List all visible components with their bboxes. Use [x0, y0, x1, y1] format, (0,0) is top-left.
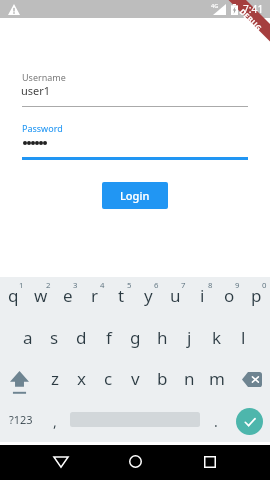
staticText: l [241, 326, 246, 349]
button[interactable]: Home [114, 445, 156, 480]
button[interactable]: j [176, 320, 203, 354]
staticText: s [50, 326, 59, 349]
button[interactable]: Shift [0, 365, 39, 399]
staticText: 3 [73, 280, 78, 290]
staticText: 0 [262, 280, 267, 290]
staticText: k [212, 326, 222, 349]
staticText: z [51, 367, 59, 390]
staticText: w [34, 284, 48, 307]
staticText: 7:41 [243, 2, 264, 16]
button[interactable]: f [95, 320, 122, 354]
button[interactable]: k [203, 320, 230, 354]
staticText: j [187, 326, 192, 349]
staticText: 4G [211, 2, 219, 9]
button[interactable]: Recents [189, 445, 231, 480]
button[interactable]: g [122, 320, 149, 354]
button[interactable]: x [68, 361, 95, 395]
staticText: 7 [181, 280, 186, 290]
staticText: 6 [154, 280, 159, 290]
button[interactable]: t [108, 278, 135, 312]
button[interactable]: y [135, 278, 162, 312]
button[interactable]: m [203, 361, 230, 395]
staticText: d [76, 326, 87, 349]
button[interactable]: l [230, 320, 257, 354]
button[interactable]: z [41, 361, 68, 395]
staticText: p [251, 284, 262, 307]
button[interactable]: w [27, 278, 54, 312]
staticText: . [214, 412, 218, 431]
staticText: Password [22, 122, 63, 134]
staticText: DEBUG [238, 7, 264, 33]
button[interactable]: i [189, 278, 216, 312]
button[interactable]: Login [102, 182, 168, 209]
button[interactable]: Enter [236, 408, 263, 435]
button[interactable]: Back [40, 445, 82, 480]
staticText: user1 [21, 83, 51, 98]
button[interactable]: s [41, 320, 68, 354]
staticText: v [131, 367, 140, 390]
button[interactable]: r [81, 278, 108, 312]
button[interactable]: Period [203, 402, 229, 440]
staticText: y [144, 284, 153, 307]
staticText: o [224, 284, 235, 307]
staticText: u [170, 284, 181, 307]
button[interactable]: Comma [41, 402, 68, 440]
staticText: 4 [100, 280, 105, 290]
button[interactable]: u [162, 278, 189, 312]
staticText: r [91, 284, 99, 307]
button[interactable]: Symbols [1, 400, 41, 438]
staticText: a [23, 326, 33, 349]
staticText: ?123 [9, 412, 33, 427]
staticText: h [157, 326, 168, 349]
button[interactable]: c [95, 361, 122, 395]
button[interactable]: n [176, 361, 203, 395]
staticText: x [77, 367, 86, 390]
button[interactable]: p [243, 278, 270, 312]
staticText: 5 [127, 280, 132, 290]
staticText: Login [120, 188, 150, 203]
staticText: g [130, 326, 141, 349]
staticText: b [157, 367, 168, 390]
staticText: 2 [46, 280, 51, 290]
staticText: 9 [235, 280, 240, 290]
staticText: , [53, 412, 57, 431]
staticText: f [106, 326, 112, 349]
staticText: 1 [19, 280, 24, 290]
staticText: n [184, 367, 195, 390]
button[interactable]: h [149, 320, 176, 354]
button[interactable]: q [0, 278, 27, 312]
button[interactable]: o [216, 278, 243, 312]
staticText: c [104, 367, 113, 390]
button[interactable]: a [14, 320, 41, 354]
button[interactable]: e [54, 278, 81, 312]
staticText: q [8, 284, 19, 307]
staticText: m [209, 367, 225, 390]
staticText: e [63, 284, 73, 307]
button[interactable]: b [149, 361, 176, 395]
button[interactable]: Backspace [233, 362, 270, 396]
staticText: t [118, 284, 125, 307]
staticText: i [200, 284, 205, 307]
button[interactable]: v [122, 361, 149, 395]
staticText: Username [22, 71, 66, 83]
button[interactable]: d [68, 320, 95, 354]
staticText: 8 [208, 280, 213, 290]
